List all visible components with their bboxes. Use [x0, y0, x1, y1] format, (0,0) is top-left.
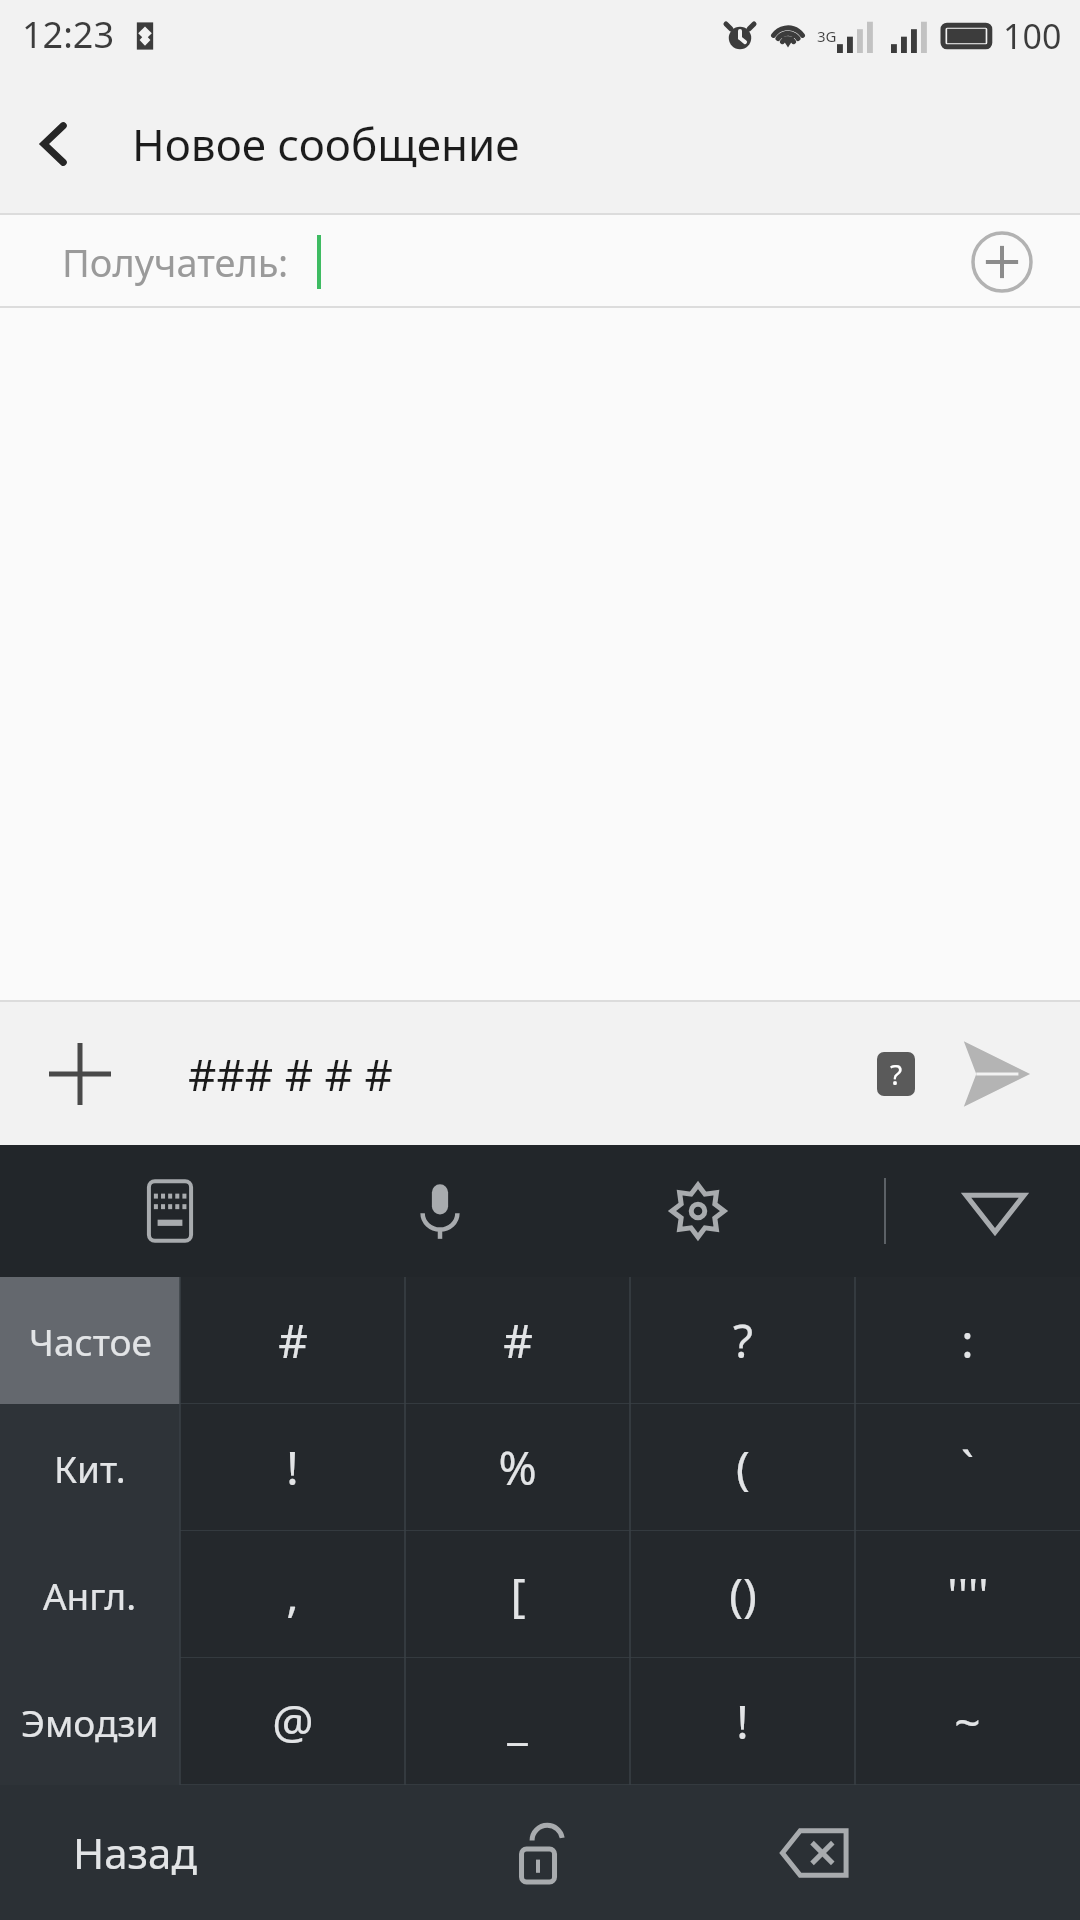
button[interactable]: Hide keyboard — [940, 1156, 1050, 1266]
staticText: # — [278, 1309, 308, 1372]
button[interactable]: , — [180, 1531, 405, 1658]
button[interactable]: Англ. — [0, 1531, 180, 1658]
button[interactable]: @ — [180, 1658, 405, 1785]
button[interactable]: Назад — [0, 1785, 270, 1920]
button[interactable]: Back — [0, 89, 110, 199]
staticText: Назад — [73, 1824, 197, 1881]
button[interactable]: # — [405, 1277, 630, 1404]
button[interactable]: : — [855, 1277, 1080, 1404]
staticText: Получатель: — [62, 236, 289, 288]
staticText: ( — [736, 1436, 750, 1499]
staticText: ~ — [954, 1690, 981, 1753]
button[interactable]: Send — [940, 1019, 1050, 1129]
staticText: Кит. — [54, 1443, 126, 1493]
staticText: Англ. — [43, 1570, 137, 1620]
staticText: () — [729, 1563, 757, 1626]
button[interactable]: ` — [855, 1404, 1080, 1531]
button[interactable]: Кит. — [0, 1404, 180, 1531]
staticText: ! — [286, 1436, 299, 1499]
staticText: : — [961, 1309, 974, 1372]
staticText: 3G — [817, 26, 837, 46]
staticText: % — [498, 1436, 537, 1499]
staticText: ### # # # — [188, 1044, 393, 1104]
staticText: Частое — [29, 1316, 152, 1366]
staticText: _ — [507, 1690, 528, 1753]
button[interactable]: ( — [630, 1404, 855, 1531]
button[interactable]: Частое — [0, 1277, 180, 1404]
button[interactable]: '''' — [855, 1531, 1080, 1658]
button[interactable]: Voice input — [392, 1163, 488, 1259]
staticText: Новое сообщение — [132, 114, 520, 174]
button[interactable]: Settings — [650, 1163, 746, 1259]
button[interactable]: ? — [630, 1277, 855, 1404]
button[interactable]: # — [180, 1277, 405, 1404]
staticText: [ — [510, 1563, 526, 1626]
staticText: 100 — [1003, 13, 1062, 59]
staticText: # — [503, 1309, 533, 1372]
button[interactable]: Attach — [30, 1024, 130, 1124]
staticText: @ — [272, 1690, 314, 1753]
button[interactable]: Backspace — [750, 1788, 880, 1918]
button[interactable]: () — [630, 1531, 855, 1658]
button[interactable]: ~ — [855, 1658, 1080, 1785]
staticText: ! — [736, 1690, 749, 1753]
staticText: ` — [961, 1436, 974, 1499]
staticText: 12:23 — [22, 10, 115, 59]
staticText: , — [286, 1563, 299, 1626]
button[interactable]: _ — [405, 1658, 630, 1785]
button[interactable]: Эмодзи — [0, 1658, 180, 1785]
button[interactable]: ! — [630, 1658, 855, 1785]
button[interactable]: [ — [405, 1531, 630, 1658]
button[interactable]: Lock — [475, 1788, 605, 1918]
staticText: '''' — [947, 1563, 989, 1626]
staticText: Эмодзи — [21, 1697, 159, 1747]
staticText: ? — [733, 1309, 753, 1372]
staticText: ? — [890, 1055, 903, 1093]
button[interactable]: Character count — [860, 1038, 932, 1110]
button[interactable]: ! — [180, 1404, 405, 1531]
button[interactable]: Add recipient — [964, 224, 1040, 300]
button[interactable]: Keyboard layout — [122, 1163, 218, 1259]
button[interactable]: % — [405, 1404, 630, 1531]
